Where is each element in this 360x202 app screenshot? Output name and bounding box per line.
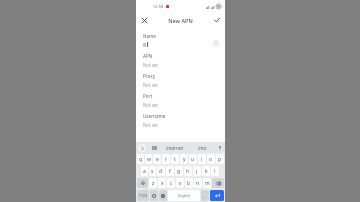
staticText: j <box>196 168 198 175</box>
button[interactable]: s <box>149 166 156 176</box>
button[interactable]: Backspace <box>212 178 224 188</box>
staticText: into <box>198 145 207 151</box>
button[interactable]: j <box>193 166 201 176</box>
button[interactable]: Clipboard suggestion <box>151 145 157 150</box>
button[interactable]: Name <box>143 33 220 53</box>
button[interactable]: p <box>216 154 224 164</box>
staticText: h <box>186 168 190 175</box>
button[interactable]: Proxy <box>143 73 220 93</box>
button[interactable]: g <box>175 166 183 176</box>
button[interactable]: l <box>211 166 219 176</box>
staticText: z <box>152 180 155 187</box>
staticText: Not set <box>143 102 158 108</box>
button[interactable]: d <box>157 166 165 176</box>
staticText: g <box>177 168 181 175</box>
staticText: English <box>178 193 191 198</box>
staticText: Port <box>143 93 153 99</box>
staticText: f <box>169 168 171 175</box>
button[interactable]: n <box>194 178 202 188</box>
staticText: internet <box>166 145 184 151</box>
staticText: p <box>218 156 222 163</box>
staticText: t <box>174 156 176 163</box>
button[interactable]: e <box>153 154 161 164</box>
staticText: s <box>151 168 154 175</box>
staticText: k <box>205 168 208 175</box>
button[interactable]: z <box>149 178 157 188</box>
staticText: q <box>139 156 143 163</box>
button[interactable]: Expand toolbar <box>138 144 146 152</box>
staticText: w <box>147 156 151 163</box>
staticText: e <box>156 156 159 163</box>
staticText: Not set <box>143 62 158 68</box>
staticText: r <box>165 156 168 163</box>
button[interactable]: k <box>202 166 210 176</box>
staticText: c <box>170 180 173 187</box>
button[interactable]: f <box>166 166 174 176</box>
button[interactable]: internet <box>166 145 184 151</box>
button[interactable]: ?123 <box>137 190 149 201</box>
button[interactable]: w <box>145 154 152 164</box>
button[interactable]: x <box>158 178 166 188</box>
button[interactable]: Clear text <box>212 39 220 47</box>
staticText: o <box>209 156 213 163</box>
staticText: 12:58 <box>153 4 164 9</box>
button[interactable]: APN <box>143 53 220 73</box>
button[interactable]: i <box>198 154 206 164</box>
button[interactable]: u <box>189 154 197 164</box>
button[interactable]: Username <box>143 113 220 133</box>
staticText: x <box>161 180 164 187</box>
staticText: Name <box>143 33 156 39</box>
button[interactable]: Change language <box>159 190 167 201</box>
button[interactable]: . <box>201 190 209 201</box>
button[interactable]: v <box>176 178 184 188</box>
staticText: i <box>201 156 203 163</box>
button[interactable]: a <box>141 166 148 176</box>
staticText: m <box>205 180 210 187</box>
button[interactable]: c <box>167 178 175 188</box>
staticText: v <box>179 180 182 187</box>
button[interactable]: b <box>185 178 193 188</box>
staticText: ?123 <box>139 193 148 198</box>
button[interactable]: Enter <box>210 190 224 201</box>
staticText: b <box>187 180 191 187</box>
button[interactable]: h <box>184 166 192 176</box>
staticText: . <box>204 193 206 199</box>
staticText: Not set <box>143 122 158 128</box>
staticText: n <box>196 180 200 187</box>
staticText: APN <box>143 53 153 59</box>
staticText: Not set <box>143 82 158 88</box>
button[interactable]: r <box>162 154 170 164</box>
button[interactable]: Emoji <box>150 190 158 201</box>
staticText: l <box>214 168 216 175</box>
staticText: d <box>159 168 163 175</box>
button[interactable]: o <box>207 154 215 164</box>
button[interactable]: Shift <box>137 178 148 188</box>
staticText: u <box>191 156 195 163</box>
button[interactable]: m <box>203 178 211 188</box>
button[interactable]: Close <box>138 14 150 26</box>
staticText: New APN <box>168 17 193 24</box>
button[interactable]: English <box>168 190 200 201</box>
button[interactable]: t <box>171 154 179 164</box>
button[interactable]: q <box>137 154 144 164</box>
staticText: Username <box>143 113 166 119</box>
button[interactable]: Port <box>143 93 220 113</box>
staticText: a <box>143 168 146 175</box>
button[interactable]: Save <box>211 14 223 26</box>
button[interactable]: into <box>198 145 207 151</box>
staticText: Proxy <box>143 73 156 79</box>
staticText: y <box>183 156 186 163</box>
button[interactable]: y <box>180 154 188 164</box>
button[interactable]: Voice input <box>216 144 223 151</box>
